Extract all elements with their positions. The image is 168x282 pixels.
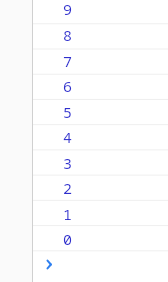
staticText: 4: [0, 127, 72, 147]
staticText: 3: [0, 153, 72, 173]
button[interactable]: [0, 175, 168, 200]
staticText: 6: [0, 76, 72, 96]
button[interactable]: [0, 0, 168, 24]
button[interactable]: [0, 125, 168, 150]
button[interactable]: Expand: [0, 251, 168, 276]
staticText: 5: [0, 102, 72, 122]
button[interactable]: [0, 226, 168, 251]
button[interactable]: [0, 74, 168, 99]
button[interactable]: [0, 200, 168, 225]
staticText: 7: [0, 51, 72, 71]
button[interactable]: [0, 49, 168, 74]
staticText: 0: [0, 229, 72, 249]
staticText: 1: [0, 204, 72, 224]
staticText: 2: [0, 178, 72, 198]
button[interactable]: [0, 24, 168, 49]
staticText: 8: [0, 25, 72, 45]
button[interactable]: [0, 150, 168, 175]
button[interactable]: [0, 99, 168, 124]
staticText: 9: [0, 0, 72, 19]
